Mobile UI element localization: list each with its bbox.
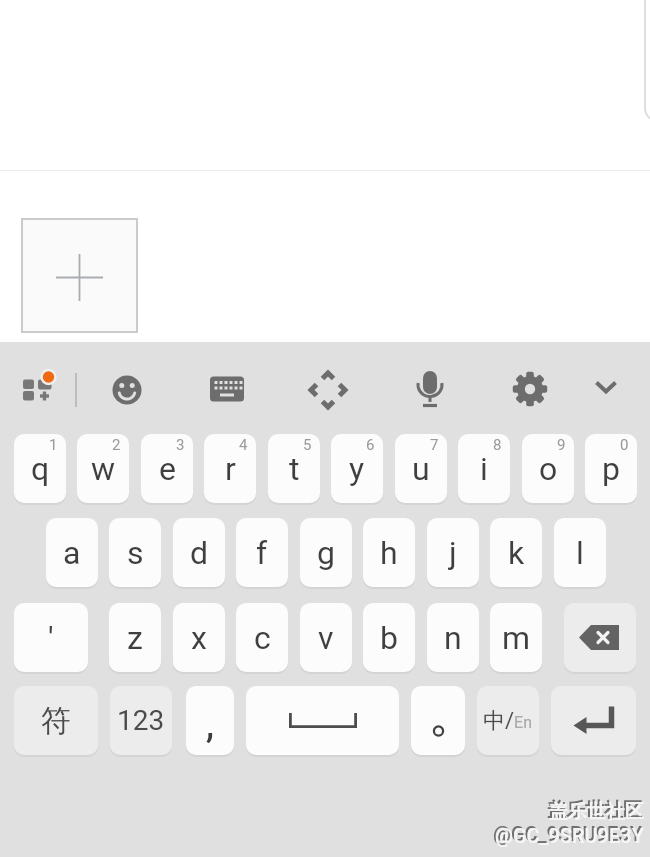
button[interactable]: a bbox=[46, 518, 98, 587]
staticText: 3 bbox=[176, 436, 185, 454]
staticText: e bbox=[159, 450, 176, 488]
button[interactable]: q bbox=[14, 434, 66, 503]
staticText: v bbox=[318, 619, 334, 657]
button[interactable] bbox=[16, 366, 62, 412]
button[interactable]: r bbox=[204, 434, 256, 503]
staticText: q bbox=[31, 450, 50, 488]
button[interactable]: k bbox=[490, 518, 542, 587]
staticText: 5 bbox=[303, 436, 312, 454]
button[interactable]: j bbox=[427, 518, 479, 587]
button[interactable]: l bbox=[554, 518, 606, 587]
button[interactable] bbox=[564, 603, 636, 672]
button[interactable]: h bbox=[363, 518, 415, 587]
button[interactable]: 123 bbox=[110, 686, 172, 755]
button[interactable] bbox=[246, 686, 399, 755]
button[interactable]: o bbox=[522, 434, 574, 503]
staticText: 1 bbox=[49, 436, 58, 454]
button[interactable] bbox=[411, 686, 465, 755]
button[interactable] bbox=[305, 367, 351, 413]
staticText: p bbox=[602, 450, 620, 488]
button[interactable] bbox=[204, 366, 250, 412]
button[interactable]: e bbox=[141, 434, 193, 503]
button[interactable]: , bbox=[186, 686, 234, 755]
staticText: l bbox=[576, 534, 584, 572]
staticText: z bbox=[127, 619, 143, 657]
button[interactable]: t bbox=[268, 434, 320, 503]
button[interactable]: s bbox=[109, 518, 161, 587]
button[interactable]: m bbox=[490, 603, 542, 672]
staticText: 盖乐世社区 bbox=[549, 800, 644, 824]
staticText: a bbox=[63, 534, 81, 572]
staticText: i bbox=[480, 450, 488, 488]
staticText: 8 bbox=[493, 436, 502, 454]
button[interactable] bbox=[551, 686, 636, 755]
staticText: 4 bbox=[239, 436, 248, 454]
button[interactable] bbox=[507, 366, 553, 412]
button[interactable]: d bbox=[173, 518, 225, 587]
staticText: x bbox=[191, 619, 207, 657]
staticText: r bbox=[225, 450, 236, 488]
staticText: k bbox=[508, 534, 525, 572]
staticText: 7 bbox=[430, 436, 439, 454]
button[interactable] bbox=[104, 367, 150, 413]
staticText: o bbox=[539, 450, 558, 488]
staticText: w bbox=[91, 450, 116, 488]
button[interactable]: z bbox=[109, 603, 161, 672]
button[interactable]: 中/En bbox=[477, 686, 539, 755]
button[interactable] bbox=[407, 366, 453, 412]
staticText: h bbox=[380, 534, 398, 572]
staticText: 2 bbox=[112, 436, 121, 454]
staticText: u bbox=[412, 450, 430, 488]
button[interactable]: b bbox=[363, 603, 415, 672]
staticText: , bbox=[206, 704, 214, 746]
button[interactable]: g bbox=[300, 518, 352, 587]
staticText: 123 bbox=[117, 704, 165, 737]
staticText: 9 bbox=[557, 436, 566, 454]
button[interactable]: y bbox=[331, 434, 383, 503]
button[interactable]: w bbox=[77, 434, 129, 503]
staticText: b bbox=[380, 619, 398, 657]
staticText: f bbox=[256, 534, 268, 572]
button[interactable]: i bbox=[458, 434, 510, 503]
staticText: 盖乐世社区 bbox=[547, 798, 642, 822]
staticText: c bbox=[254, 619, 271, 657]
button[interactable]: f bbox=[236, 518, 288, 587]
staticText: j bbox=[449, 534, 457, 572]
staticText: y bbox=[349, 450, 365, 488]
button[interactable]: 符 bbox=[14, 686, 98, 755]
staticText: @GC_9SRU9E3Y bbox=[493, 822, 642, 845]
staticText: @GC_9SRU9E3Y bbox=[495, 824, 644, 847]
staticText: s bbox=[127, 534, 144, 572]
button[interactable]: p bbox=[585, 434, 637, 503]
staticText: 中/En bbox=[483, 707, 533, 735]
staticText: 0 bbox=[620, 436, 629, 454]
staticText: n bbox=[444, 619, 462, 657]
button[interactable]: x bbox=[173, 603, 225, 672]
staticText: d bbox=[190, 534, 209, 572]
staticText: 6 bbox=[366, 436, 375, 454]
staticText: ' bbox=[48, 619, 54, 657]
button[interactable]: u bbox=[395, 434, 447, 503]
button[interactable] bbox=[583, 364, 629, 410]
button[interactable] bbox=[21, 218, 138, 333]
staticText: m bbox=[502, 619, 531, 657]
staticText: 符 bbox=[41, 702, 71, 740]
button[interactable]: v bbox=[300, 603, 352, 672]
staticText: g bbox=[317, 534, 335, 572]
button[interactable]: c bbox=[236, 603, 288, 672]
button[interactable]: ' bbox=[14, 603, 88, 672]
button[interactable]: n bbox=[427, 603, 479, 672]
staticText: t bbox=[289, 450, 300, 488]
